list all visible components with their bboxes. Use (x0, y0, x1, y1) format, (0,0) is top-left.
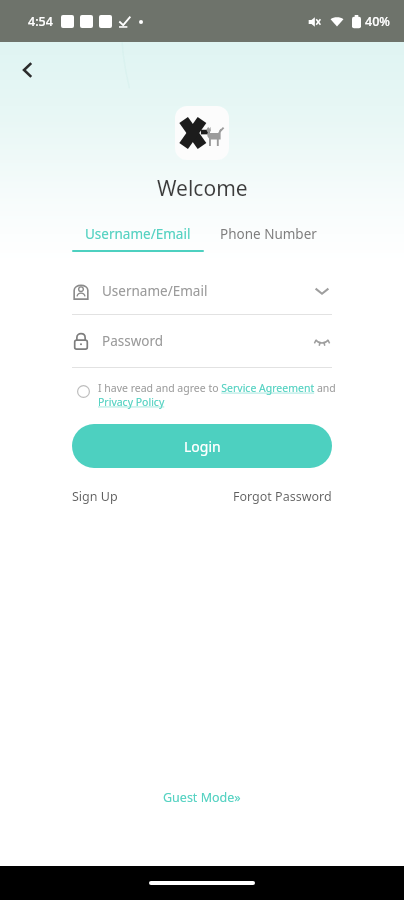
button[interactable]: Password (72, 315, 332, 367)
staticText: Guest Mode» (163, 789, 241, 806)
staticText: Username/Email (85, 225, 191, 243)
staticText: Password (102, 332, 164, 350)
button[interactable]: Forgot Password (233, 488, 332, 505)
staticText: 40% (365, 13, 390, 30)
button[interactable]: Login (72, 424, 332, 468)
staticText: Sign Up (72, 488, 118, 505)
staticText: I have read and agree to Service Agreeme… (98, 381, 338, 409)
button[interactable]: Back (0, 42, 56, 98)
button[interactable]: Guest Mode» (155, 781, 249, 814)
staticText: Phone Number (220, 225, 317, 243)
staticText: Forgot Password (233, 488, 332, 505)
staticText: Username/Email (102, 282, 208, 300)
staticText: 4:54 (28, 13, 53, 30)
staticText: Welcome (157, 174, 248, 203)
button[interactable]: Agree to terms (72, 380, 94, 402)
other: Show password (312, 331, 332, 351)
other: Show accounts (312, 281, 332, 301)
button[interactable]: Phone Number (220, 225, 317, 252)
staticText: Login (184, 437, 221, 456)
button[interactable]: Username/Email (72, 225, 204, 252)
button[interactable]: Username/Email (72, 268, 332, 314)
button[interactable]: Sign Up (72, 488, 118, 505)
